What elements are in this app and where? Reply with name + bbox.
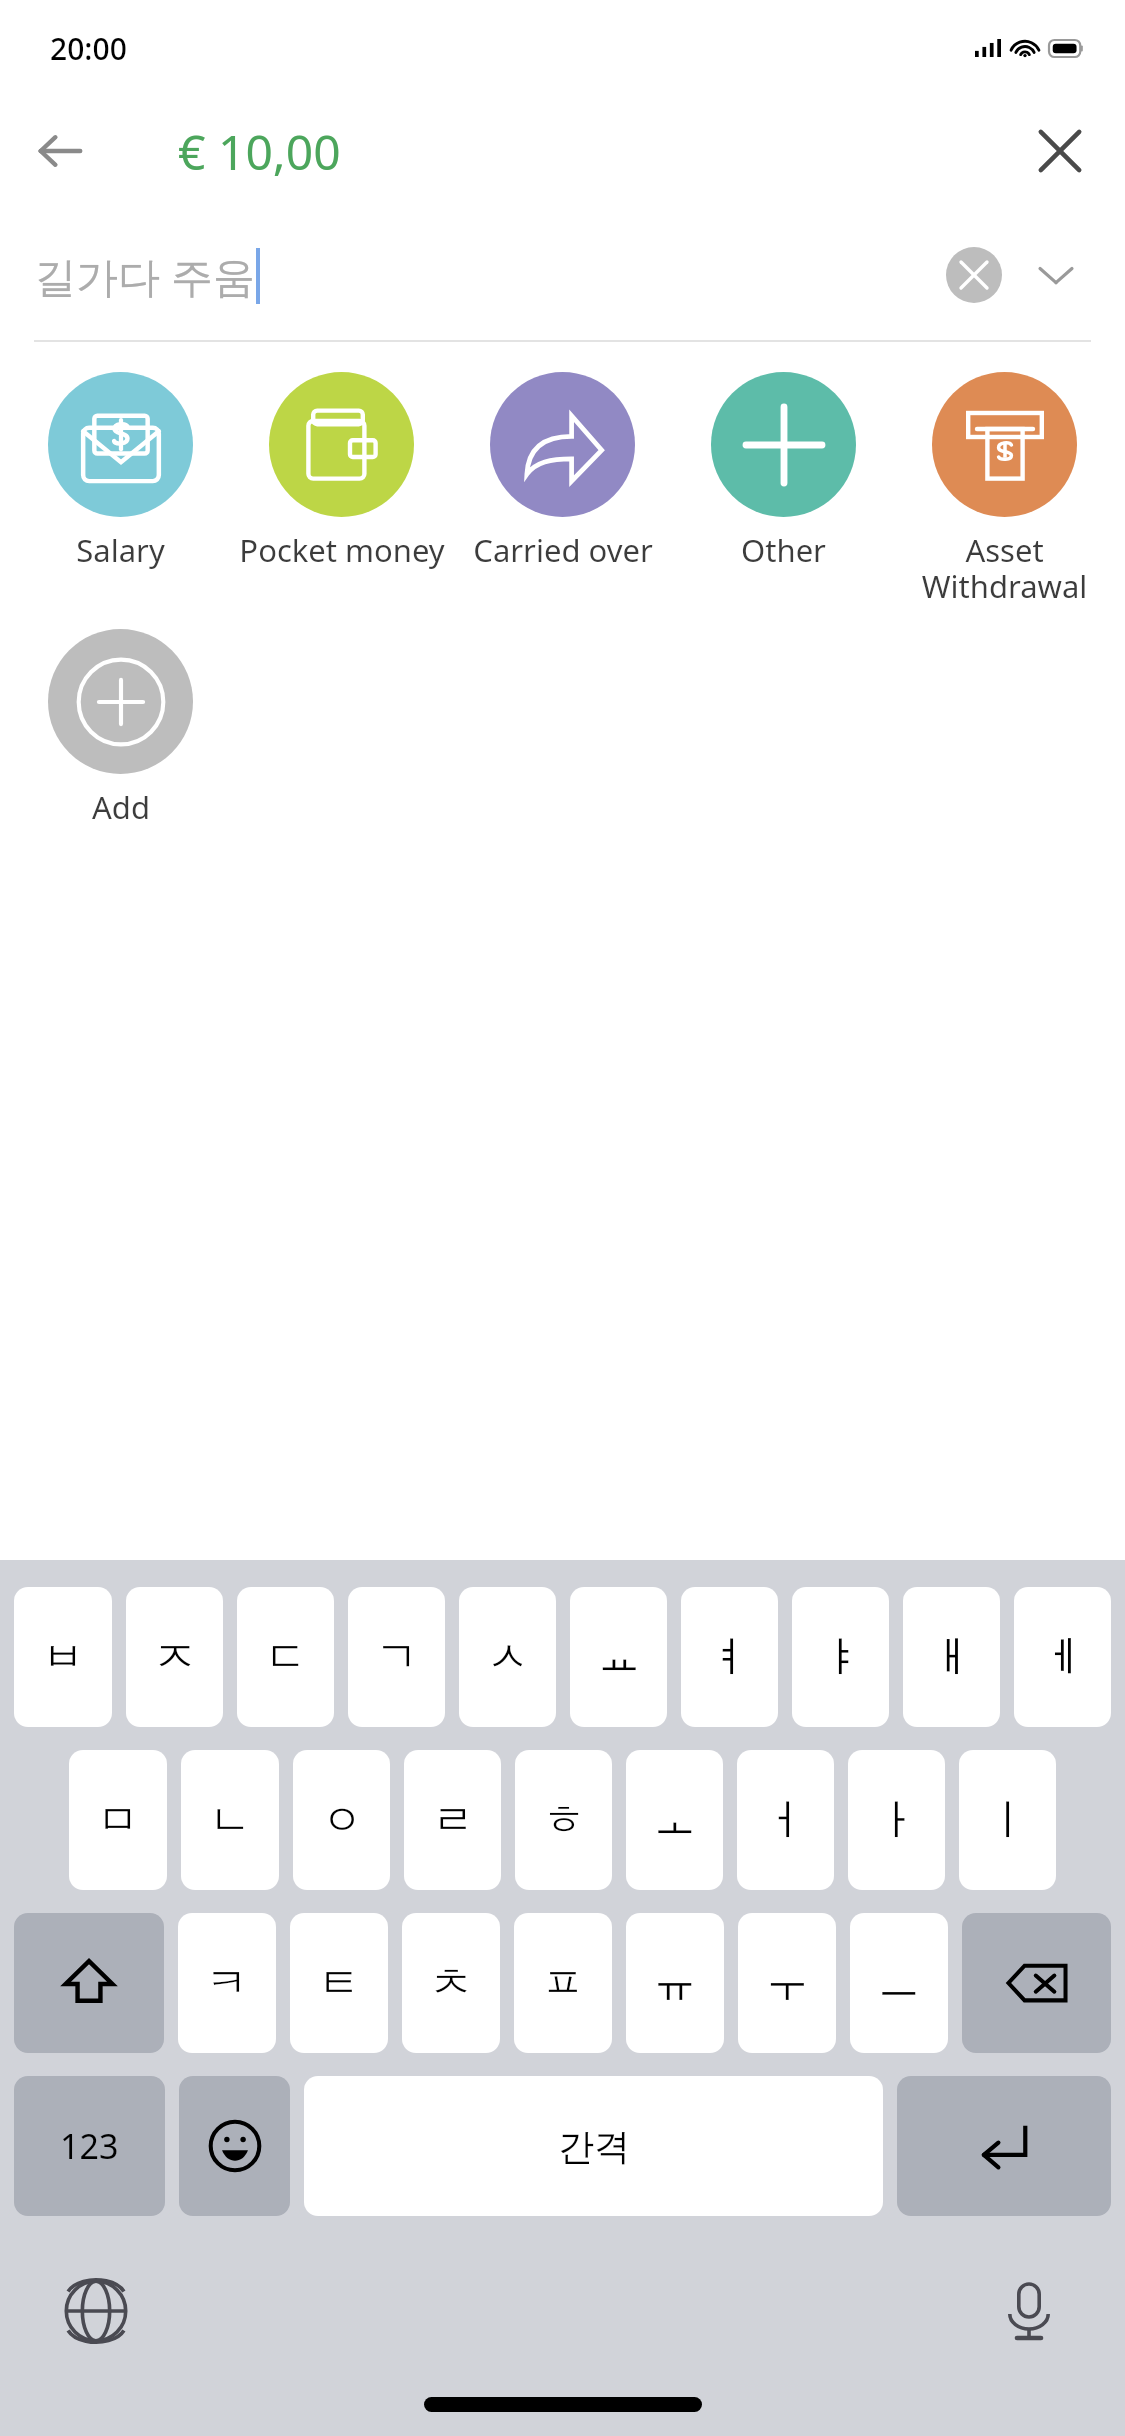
staticText: ㅊ [430, 1957, 472, 2010]
button[interactable]: ㅍ [514, 1913, 612, 2053]
button[interactable]: ㅠ [626, 1913, 724, 2053]
button[interactable]: ㅊ [402, 1913, 500, 2053]
staticText: Asset Withdrawal [898, 529, 1111, 607]
button[interactable]: Clear [937, 238, 1011, 312]
staticText: ㅇ [321, 1794, 363, 1847]
staticText: ㅛ [598, 1631, 640, 1684]
button[interactable]: ㅐ [903, 1587, 1000, 1727]
staticText: 123 [60, 2123, 119, 2169]
staticText: ㅕ [709, 1631, 751, 1684]
button[interactable]: ㄹ [404, 1750, 501, 1890]
staticText: 길가다 주움 [34, 247, 255, 304]
button[interactable]: Expand [1021, 240, 1091, 310]
staticText: ㅌ [318, 1957, 360, 2010]
staticText: ㅈ [154, 1631, 196, 1684]
staticText: ㅅ [487, 1631, 529, 1684]
button[interactable]: ㅅ [459, 1587, 556, 1727]
staticText: 20:00 [50, 28, 127, 69]
button[interactable]: ㅌ [290, 1913, 388, 2053]
button[interactable]: Voice input [983, 2265, 1075, 2357]
staticText: Pocket money [239, 529, 445, 571]
button[interactable]: ㅁ [69, 1750, 167, 1890]
staticText: ㅠ [654, 1957, 696, 2010]
button[interactable]: ㅛ [570, 1587, 667, 1727]
staticText: ㅔ [1042, 1631, 1084, 1684]
button[interactable]: Add [10, 629, 231, 828]
staticText: ㅂ [42, 1631, 84, 1684]
button[interactable]: Close [1017, 108, 1103, 194]
button[interactable]: ㅜ [738, 1913, 836, 2053]
button[interactable]: Backspace [962, 1913, 1111, 2053]
button[interactable]: Enter [897, 2076, 1111, 2216]
staticText: ㅁ [97, 1794, 139, 1847]
button[interactable]: ㅂ [14, 1587, 112, 1727]
button[interactable]: Salary [10, 372, 231, 571]
staticText: € 10,00 [178, 119, 341, 184]
staticText: ㅜ [766, 1957, 808, 2010]
button[interactable]: Emoji [179, 2076, 290, 2216]
staticText: ㅣ [987, 1794, 1029, 1847]
button[interactable]: ㅗ [626, 1750, 723, 1890]
button[interactable]: ㅡ [850, 1913, 948, 2053]
button[interactable]: Asset Withdrawal [894, 372, 1115, 607]
button[interactable]: ㄷ [237, 1587, 334, 1727]
button[interactable]: ㅈ [126, 1587, 223, 1727]
button[interactable]: ㅓ [737, 1750, 834, 1890]
staticText: ㅗ [654, 1794, 696, 1847]
button[interactable]: ㅑ [792, 1587, 889, 1727]
button[interactable]: ㄱ [348, 1587, 445, 1727]
staticText: ㅐ [931, 1631, 973, 1684]
button[interactable]: Change keyboard [50, 2265, 142, 2357]
staticText: 간격 [558, 2124, 630, 2169]
button[interactable]: ㅎ [515, 1750, 612, 1890]
staticText: Carried over [473, 529, 653, 571]
staticText: ㄱ [376, 1631, 418, 1684]
button[interactable]: Other [673, 372, 894, 571]
button[interactable]: ㅏ [848, 1750, 945, 1890]
button[interactable]: ㅕ [681, 1587, 778, 1727]
button[interactable]: ㅔ [1014, 1587, 1111, 1727]
button[interactable]: ㄴ [181, 1750, 279, 1890]
staticText: ㅏ [876, 1794, 918, 1847]
staticText: Salary [76, 529, 165, 571]
staticText: ㅍ [542, 1957, 584, 2010]
button[interactable]: 123 [14, 2076, 165, 2216]
staticText: ㅓ [765, 1794, 807, 1847]
staticText: ㄴ [209, 1794, 251, 1847]
button[interactable]: ㅇ [293, 1750, 390, 1890]
staticText: ㅑ [820, 1631, 862, 1684]
button[interactable]: Shift [14, 1913, 164, 2053]
button[interactable]: Pocket money [231, 372, 452, 571]
button[interactable]: 간격 [304, 2076, 883, 2216]
staticText: ㅡ [878, 1957, 920, 2010]
staticText: ㅋ [206, 1957, 248, 2010]
staticText: Other [741, 529, 826, 571]
staticText: ㄷ [265, 1631, 307, 1684]
button[interactable]: ㅣ [959, 1750, 1056, 1890]
staticText: Add [92, 786, 150, 828]
staticText: ㄹ [432, 1794, 474, 1847]
button[interactable]: ㅋ [178, 1913, 276, 2053]
staticText: ㅎ [543, 1794, 585, 1847]
button[interactable]: Carried over [452, 372, 673, 571]
button[interactable]: Back [20, 111, 100, 191]
